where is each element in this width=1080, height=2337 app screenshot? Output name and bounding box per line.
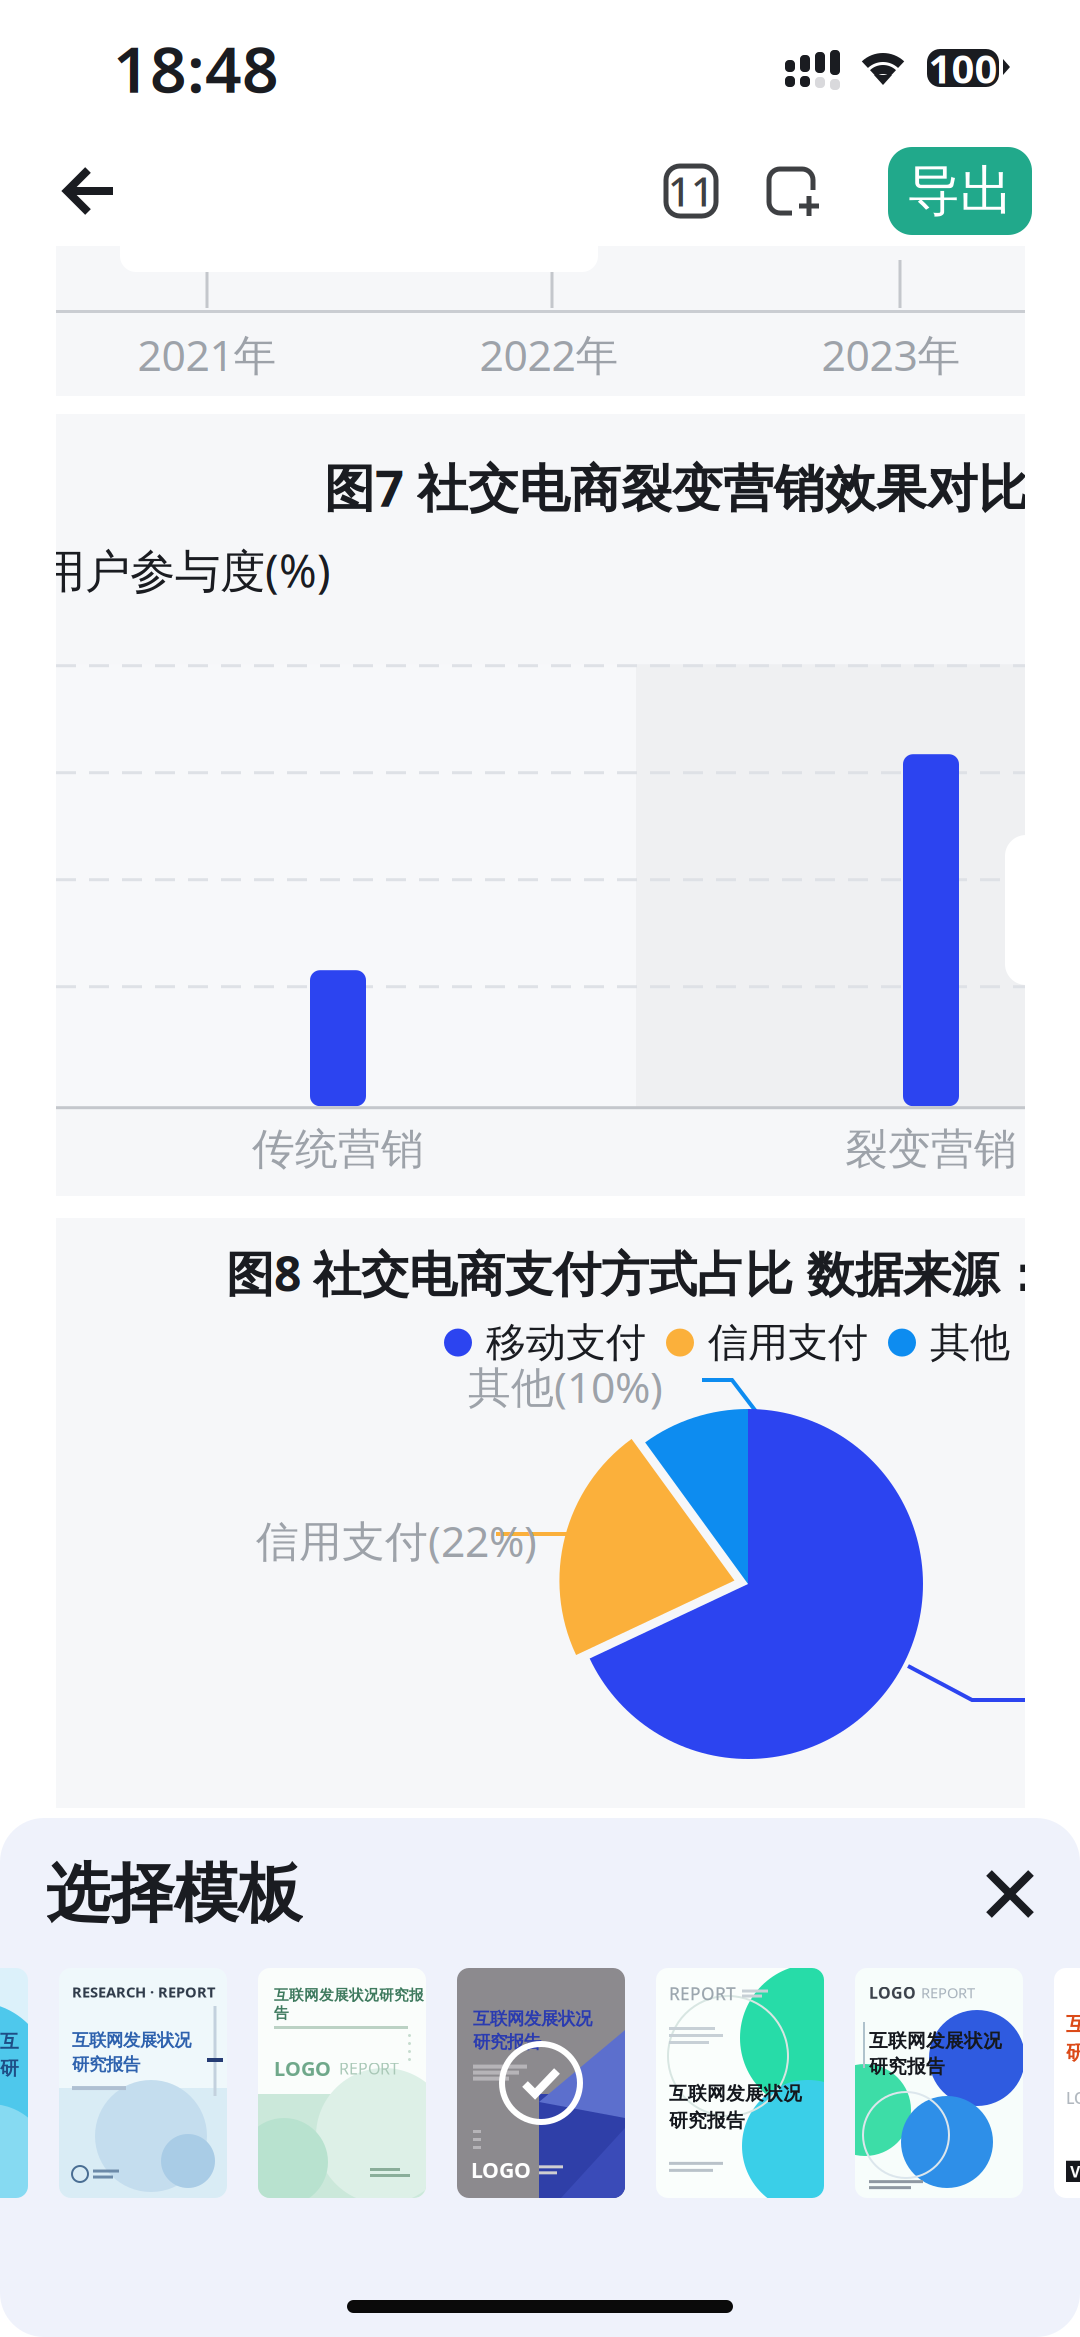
- staticText: REPORT: [669, 1982, 736, 2005]
- staticText: LOGO: [869, 1982, 916, 2003]
- staticText: RESEARCH · REPORT: [72, 1982, 215, 2001]
- staticText: 2022年: [479, 326, 618, 383]
- staticText: REPORT: [921, 1983, 975, 2002]
- staticText: 选择模板: [46, 1855, 302, 1933]
- staticText: 研究报告: [72, 2054, 140, 2075]
- staticText: 用户参与度(%): [40, 540, 331, 600]
- button[interactable]: Add page: [742, 142, 840, 240]
- staticText: 传统营销: [252, 1123, 424, 1176]
- button[interactable]: Template 1: [0, 1968, 28, 2198]
- staticText: 研: [0, 2057, 19, 2080]
- staticText: 信用支付: [708, 1318, 868, 1367]
- staticText: 互: [1066, 2012, 1080, 2037]
- staticText: 互联网发展状况研究报告: [274, 1986, 424, 2022]
- button[interactable]: 导出: [888, 147, 1032, 235]
- staticText: 信用支付(22%): [256, 1512, 537, 1569]
- staticText: 移动支付: [486, 1318, 646, 1367]
- button[interactable]: Template 4: [457, 1968, 625, 2198]
- button[interactable]: Pages: [640, 140, 742, 242]
- staticText: REPORT: [339, 2058, 399, 2079]
- staticText: 其他(10%): [468, 1358, 663, 1415]
- staticText: 互联网发展状况: [669, 2082, 802, 2105]
- button[interactable]: Template 6: [855, 1968, 1023, 2198]
- staticText: 11: [668, 164, 714, 217]
- staticText: 研究报告: [869, 2055, 945, 2078]
- button[interactable]: Close: [970, 1854, 1050, 1934]
- button[interactable]: Template 5: [656, 1968, 824, 2198]
- button[interactable]: Back: [44, 142, 134, 240]
- staticText: 研究报告: [669, 2109, 745, 2132]
- button[interactable]: Template 2: [59, 1968, 227, 2198]
- staticText: 100: [928, 41, 997, 94]
- staticText: 互联网发展状况: [473, 2008, 592, 2029]
- staticText: 导出: [907, 158, 1013, 224]
- button[interactable]: Template 3: [258, 1968, 426, 2198]
- staticText: 图7 社交电商裂变营销效果对比 数: [324, 453, 1080, 521]
- staticText: 研究报告: [473, 2031, 541, 2053]
- staticText: 2023年: [821, 326, 960, 383]
- staticText: 2021年: [137, 326, 276, 383]
- staticText: 其他: [930, 1318, 1010, 1367]
- staticText: 互联网发展状况: [869, 2029, 1002, 2052]
- staticText: VI: [1070, 2161, 1080, 2182]
- staticText: LOGO: [471, 2156, 531, 2184]
- staticText: 图8 社交电商支付方式占比 数据来源：: [226, 1241, 1047, 1305]
- button[interactable]: Template 7: [1054, 1968, 1080, 2198]
- staticText: 裂变营销: [845, 1123, 1017, 1176]
- staticText: LO: [1066, 2087, 1080, 2108]
- staticText: 研: [1066, 2041, 1080, 2065]
- staticText: 互联网发展状况: [72, 2029, 191, 2051]
- staticText: 18:48: [113, 25, 279, 110]
- staticText: LOGO: [274, 2055, 331, 2082]
- staticText: 互: [0, 2030, 19, 2053]
